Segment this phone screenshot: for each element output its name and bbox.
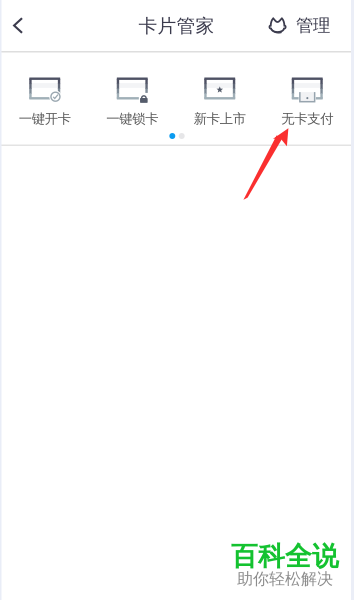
button[interactable]: Back	[0, 3, 36, 47]
staticText: 无卡支付	[281, 110, 333, 127]
staticText: 助你轻松解决	[237, 569, 333, 589]
staticText: 卡片管家	[138, 14, 214, 37]
staticText: 一键锁卡	[106, 110, 158, 127]
staticText: 一键开卡	[19, 110, 71, 127]
button[interactable]: 一键锁卡	[88, 52, 176, 127]
button[interactable]: 管理	[268, 3, 330, 47]
staticText: 百科全说	[231, 540, 339, 573]
button[interactable]: 无卡支付	[263, 52, 351, 127]
button[interactable]: 一键开卡	[1, 52, 88, 127]
button[interactable]: 新卡上市	[176, 52, 263, 127]
staticText: 管理	[296, 15, 330, 36]
staticText: 新卡上市	[194, 110, 246, 127]
